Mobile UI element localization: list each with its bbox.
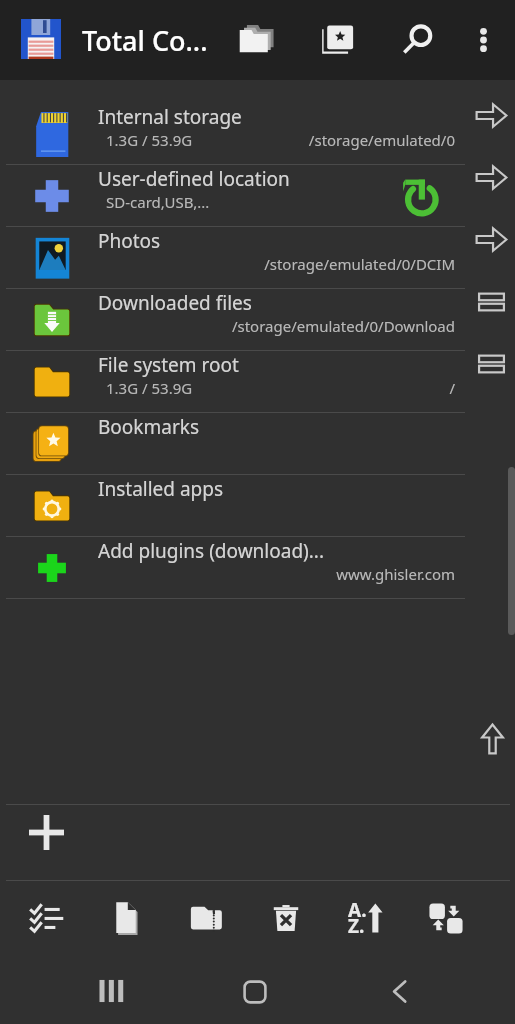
button[interactable]: Delete	[260, 892, 312, 944]
button[interactable]: Add plugins (download)...	[0, 537, 515, 599]
button[interactable]: Home	[227, 963, 283, 1019]
staticText: Bookmarks	[98, 414, 200, 440]
staticText: Downloaded files	[98, 290, 252, 316]
staticText: 1.3G / 53.9G	[106, 130, 193, 150]
staticText: Installed apps	[98, 476, 224, 502]
button[interactable]: Add tab	[20, 806, 73, 859]
button[interactable]: Zip	[180, 892, 232, 944]
button[interactable]: New file	[100, 892, 152, 944]
staticText: Total Co...	[82, 22, 208, 59]
staticText: /storage/emulated/0/DCIM	[0, 254, 455, 274]
staticText: /storage/emulated/0/Download	[0, 316, 455, 336]
staticText: Internal storage	[98, 104, 242, 130]
button[interactable]: Search	[392, 14, 444, 66]
staticText: A.	[348, 897, 367, 923]
staticText: Z.	[348, 913, 365, 939]
staticText: Add plugins (download)...	[98, 538, 325, 564]
button[interactable]: Go up	[474, 721, 510, 757]
button[interactable]: Open folders	[231, 14, 283, 66]
staticText: User-defined location	[98, 166, 290, 192]
staticText: File system root	[98, 352, 239, 378]
button[interactable]: More options	[459, 16, 507, 64]
button[interactable]: App icon	[14, 12, 67, 65]
button[interactable]: Bookmarks	[0, 413, 515, 475]
staticText: SD-card,USB,...	[106, 192, 210, 212]
button[interactable]: File system root	[0, 351, 515, 413]
staticText: /	[0, 378, 455, 398]
staticText: 1.3G / 53.9G	[106, 378, 193, 398]
button[interactable]: Bookmarks	[312, 14, 364, 66]
button[interactable]: Select files	[20, 892, 72, 944]
button[interactable]: Recents	[83, 963, 139, 1019]
button[interactable]: Sort	[340, 892, 392, 944]
button[interactable]: User-defined location	[0, 165, 515, 227]
staticText: Photos	[98, 228, 161, 254]
staticText: www.ghisler.com	[0, 564, 455, 584]
staticText: /storage/emulated/0	[0, 130, 455, 150]
button[interactable]: Installed apps	[0, 475, 515, 537]
button[interactable]: Exchange panels	[420, 892, 472, 944]
button[interactable]: Photos	[0, 227, 515, 289]
button[interactable]: Internal storage	[0, 103, 515, 165]
button[interactable]: Downloaded files	[0, 289, 515, 351]
button[interactable]: Back	[371, 963, 427, 1019]
